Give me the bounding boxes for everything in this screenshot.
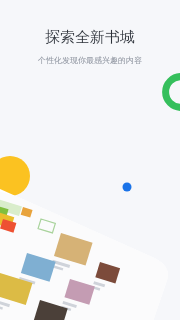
staticText: 探索全新书城 <box>45 28 135 47</box>
staticText: 个性化发现你最感兴趣的内容 <box>38 55 142 65</box>
